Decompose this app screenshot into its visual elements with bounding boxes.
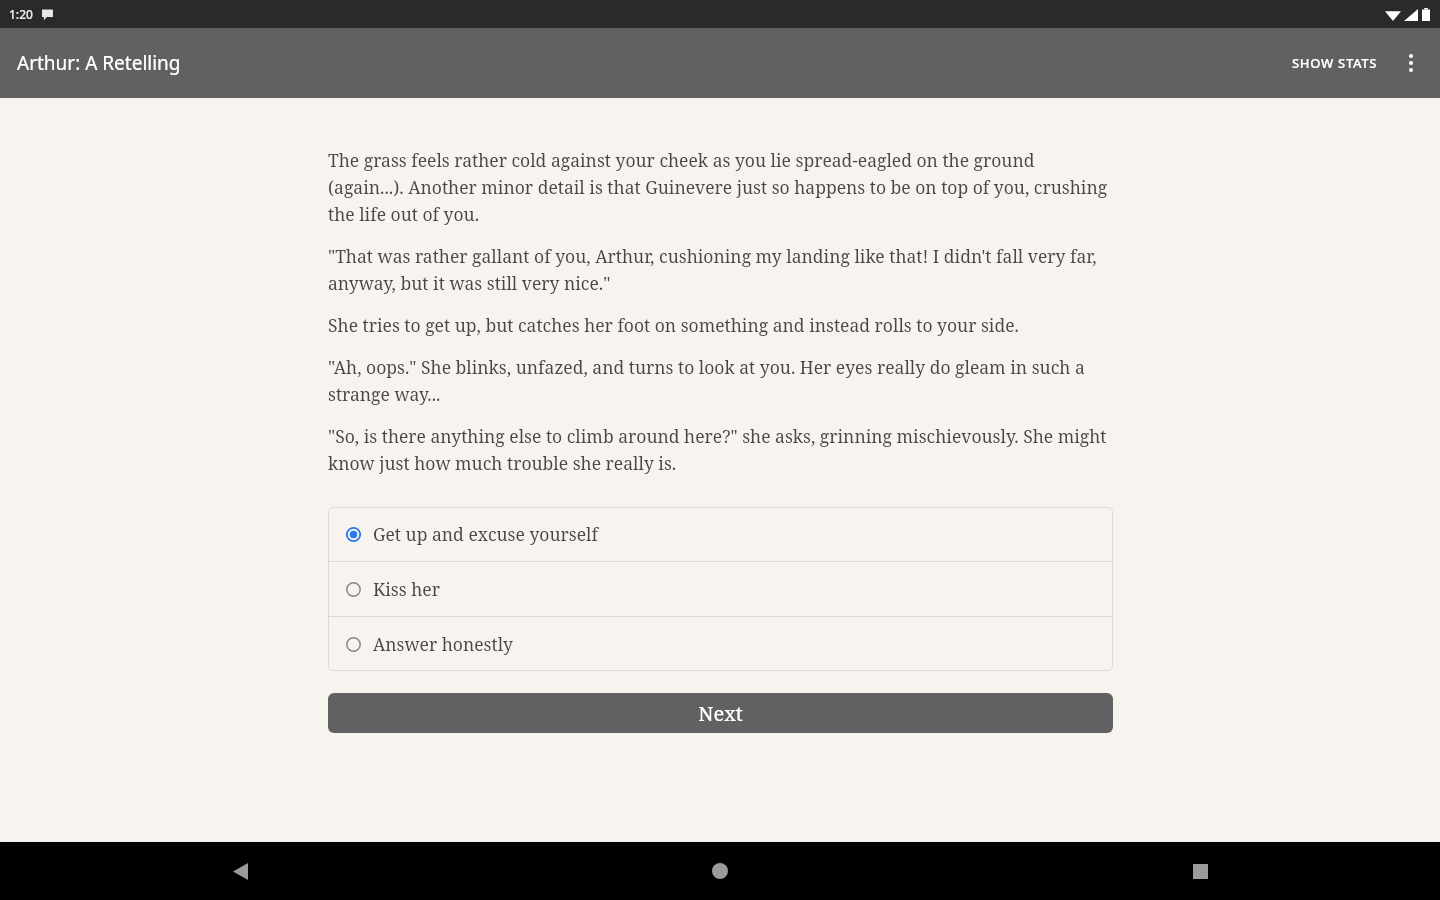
staticText: 1:20	[9, 6, 33, 22]
button[interactable]: Recent apps	[1176, 847, 1224, 895]
button[interactable]: Home	[696, 847, 744, 895]
button[interactable]: Next	[328, 693, 1113, 733]
staticText: She tries to get up, but catches her foo…	[328, 313, 1019, 337]
button[interactable]: More options	[1388, 40, 1434, 86]
button[interactable]: Answer honestly	[328, 617, 1113, 671]
staticText: Answer honestly	[373, 632, 513, 656]
staticText: Next	[698, 700, 743, 727]
button[interactable]: Kiss her	[328, 562, 1113, 616]
button[interactable]: Get up and excuse yourself	[328, 507, 1113, 561]
button[interactable]: SHOW STATS	[1282, 42, 1388, 84]
staticText: "Ah, oops." She blinks, unfazed, and tur…	[328, 355, 1113, 406]
button[interactable]: Back	[216, 847, 264, 895]
staticText: The grass feels rather cold against your…	[328, 148, 1113, 226]
staticText: "So, is there anything else to climb aro…	[328, 424, 1113, 475]
staticText: Kiss her	[373, 577, 440, 601]
staticText: Get up and excuse yourself	[373, 522, 598, 546]
staticText: "That was rather gallant of you, Arthur,…	[328, 244, 1113, 295]
staticText: SHOW STATS	[1292, 54, 1378, 72]
staticText: Arthur: A Retelling	[17, 50, 181, 76]
